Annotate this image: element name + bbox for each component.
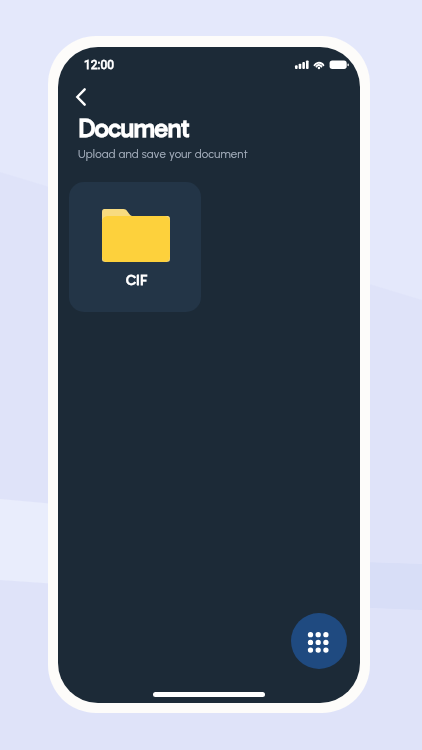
staticText: 12:00	[84, 58, 114, 72]
button[interactable]: Apps	[291, 613, 347, 669]
staticText: CIF	[126, 272, 148, 289]
staticText: Upload and save your document	[78, 147, 248, 161]
staticText: Document	[78, 113, 190, 144]
button[interactable]: Back	[64, 80, 98, 114]
button[interactable]: CIF	[69, 182, 201, 312]
